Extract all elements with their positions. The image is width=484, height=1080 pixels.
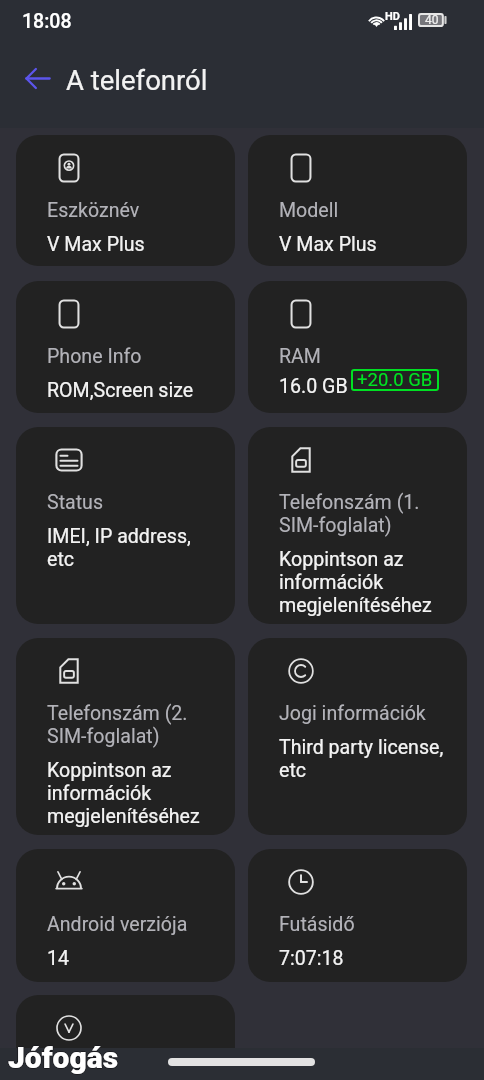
staticText: Telefonszám (1. SIM-foglalat) xyxy=(279,491,420,537)
staticText: Jogi információk xyxy=(279,702,426,725)
button[interactable]: Telefonszám (1. SIM-foglalat) xyxy=(248,427,467,624)
staticText: Jófogás xyxy=(9,1040,120,1075)
staticText: A telefonról xyxy=(66,64,208,96)
staticText: RAM xyxy=(279,345,321,368)
staticText: Third party license, etc xyxy=(279,736,444,782)
button[interactable]: RAM xyxy=(248,281,467,413)
button[interactable]: Phone Info xyxy=(16,281,235,413)
staticText: 7:07:18 xyxy=(279,947,344,970)
button[interactable]: Jogi információk xyxy=(248,638,467,835)
staticText: Koppintson az információk megjelenítéséh… xyxy=(47,759,200,828)
staticText: Telefonszám (2. SIM-foglalat) xyxy=(47,702,188,748)
staticText: IMEI, IP address, etc xyxy=(47,525,191,571)
staticText: +20.0 GB xyxy=(357,369,433,391)
button[interactable]: Telefonszám (2. SIM-foglalat) xyxy=(16,638,235,835)
staticText: Eszköznév xyxy=(47,199,140,222)
staticText: 14 xyxy=(47,947,70,970)
button[interactable]: Verzió xyxy=(16,995,235,1080)
staticText: Koppintson az információk megjelenítéséh… xyxy=(279,548,432,617)
staticText: Futásidő xyxy=(279,913,355,936)
staticText: V Max Plus xyxy=(47,233,145,256)
staticText: 16.0 GB xyxy=(279,375,348,398)
staticText: Jófogás xyxy=(8,1039,119,1074)
button[interactable]: Eszköznév xyxy=(16,135,235,266)
staticText: 40 xyxy=(425,13,439,27)
staticText: Jófogás xyxy=(8,1040,119,1075)
button[interactable]: Status xyxy=(16,427,235,624)
staticText: Android verziója xyxy=(47,913,188,936)
staticText: Modell xyxy=(279,199,339,222)
staticText: HD xyxy=(385,10,400,23)
button[interactable]: Modell xyxy=(248,135,467,266)
staticText: Status xyxy=(47,491,104,514)
staticText: Jófogás xyxy=(7,1040,118,1075)
button[interactable]: Futásidő xyxy=(248,849,467,982)
staticText: Phone Info xyxy=(47,345,142,368)
staticText: Jófogás xyxy=(8,1041,119,1076)
staticText: V Max Plus xyxy=(279,233,377,256)
staticText: 18:08 xyxy=(22,10,72,33)
button[interactable]: Android verziója xyxy=(16,849,235,982)
staticText: ROM,Screen size xyxy=(47,379,194,402)
button[interactable]: Back xyxy=(15,56,59,100)
